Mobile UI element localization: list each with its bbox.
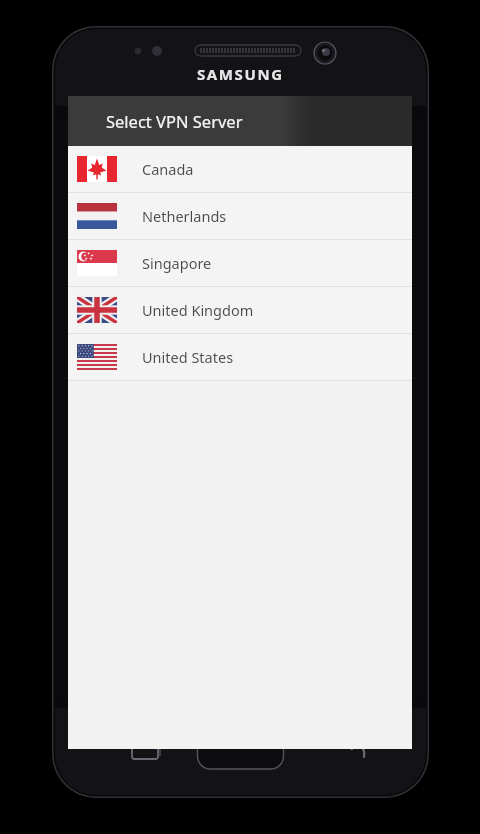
button[interactable]: Netherlands [68,193,412,240]
button[interactable]: Singapore [68,240,412,287]
staticText: SAMSUNG [197,64,284,84]
staticText: Netherlands [142,206,227,226]
staticText: Select VPN Server [106,110,243,132]
button[interactable]: United Kingdom [68,287,412,334]
staticText: United Kingdom [142,300,254,320]
button[interactable]: Canada [68,146,412,193]
button[interactable]: United States [68,334,412,381]
staticText: Canada [142,159,194,179]
staticText: Singapore [142,253,212,273]
button[interactable]: Select VPN Server [68,96,412,146]
staticText: United States [142,347,234,367]
